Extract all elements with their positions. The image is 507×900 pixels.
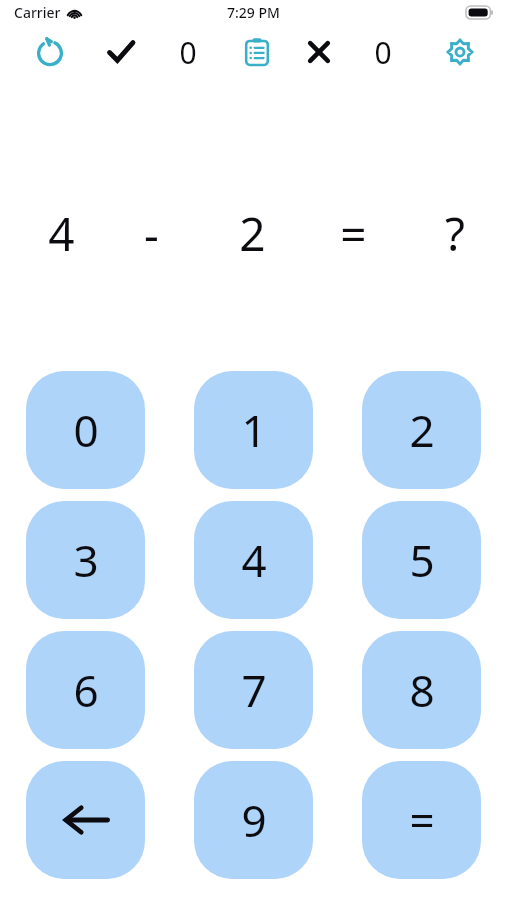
staticText: 2: [239, 202, 266, 265]
staticText: ?: [445, 202, 465, 265]
staticText: 4: [48, 202, 75, 265]
staticText: 4: [241, 530, 267, 590]
button[interactable]: 5: [362, 501, 481, 619]
staticText: 1: [241, 400, 267, 460]
button[interactable]: =: [362, 761, 481, 879]
staticText: 0: [73, 400, 99, 460]
button[interactable]: Settings: [439, 31, 481, 73]
button[interactable]: 1: [194, 371, 313, 489]
staticText: 3: [73, 530, 99, 590]
button[interactable]: 3: [26, 501, 145, 619]
staticText: 8: [409, 660, 435, 720]
staticText: 9: [241, 790, 267, 850]
button[interactable]: 4: [194, 501, 313, 619]
button[interactable]: 7: [194, 631, 313, 749]
staticText: 6: [73, 660, 99, 720]
button[interactable]: 6: [26, 631, 145, 749]
staticText: 0: [173, 32, 203, 73]
button[interactable]: Reset: [30, 32, 70, 72]
staticText: =: [409, 790, 435, 850]
staticText: 7:29 PM: [227, 3, 280, 22]
staticText: 0: [368, 32, 398, 73]
button[interactable]: History: [236, 31, 278, 73]
staticText: Carrier: [14, 3, 61, 22]
staticText: 2: [409, 400, 435, 460]
button[interactable]: Correct answers: [101, 32, 141, 72]
staticText: 5: [409, 530, 435, 590]
button[interactable]: Wrong answers: [299, 32, 339, 72]
button[interactable]: 9: [194, 761, 313, 879]
staticText: 7: [241, 660, 267, 720]
button[interactable]: Backspace: [26, 761, 145, 879]
staticText: -: [144, 202, 159, 265]
button[interactable]: 8: [362, 631, 481, 749]
button[interactable]: 0: [26, 371, 145, 489]
button[interactable]: 2: [362, 371, 481, 489]
staticText: =: [340, 202, 367, 265]
